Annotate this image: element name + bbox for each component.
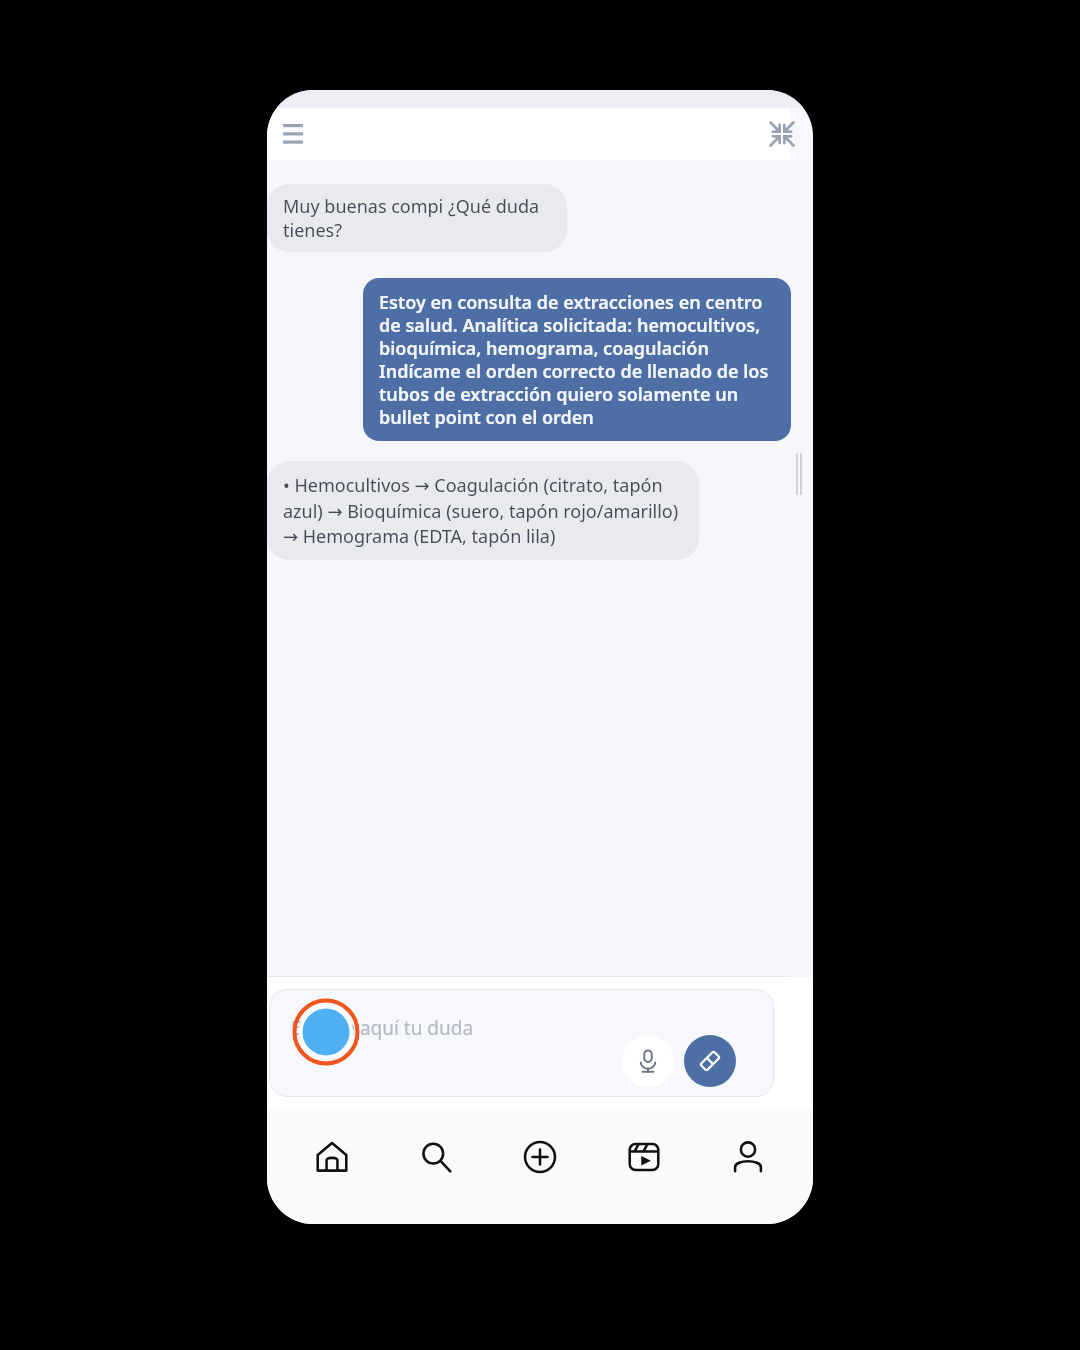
button[interactable]: Search	[397, 1117, 475, 1197]
button[interactable]: Clear	[684, 1035, 736, 1087]
button[interactable]: Create	[501, 1117, 579, 1197]
staticText: Estoy en consulta de extracciones en cen…	[379, 290, 775, 429]
button[interactable]: • Hemocultivos → Coagulación (citrato, t…	[267, 461, 699, 560]
button[interactable]: Reels	[605, 1117, 683, 1197]
button[interactable]: Resize handle	[795, 453, 803, 495]
button[interactable]: Voice input	[622, 1035, 674, 1087]
button[interactable]: Escribe aquí tu duda	[269, 989, 774, 1097]
button[interactable]: Home	[293, 1117, 371, 1197]
staticText: • Hemocultivos → Coagulación (citrato, t…	[283, 473, 683, 548]
button[interactable]: Profile	[709, 1117, 787, 1197]
button[interactable]: Collapse	[760, 112, 804, 156]
staticText: Escribe aquí tu duda	[291, 1015, 474, 1041]
staticText: Muy buenas compi ¿Qué duda tienes?	[283, 194, 551, 242]
button[interactable]: Muy buenas compi ¿Qué duda tienes?	[267, 184, 567, 252]
button[interactable]: Estoy en consulta de extracciones en cen…	[363, 278, 791, 441]
button[interactable]: Menu	[271, 112, 315, 156]
